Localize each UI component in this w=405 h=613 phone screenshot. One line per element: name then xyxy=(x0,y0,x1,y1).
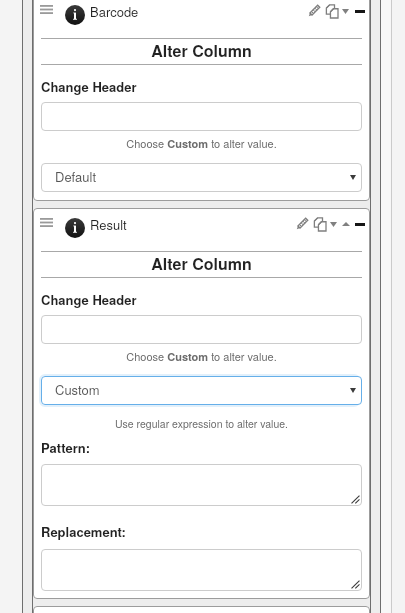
button[interactable]: Info xyxy=(65,218,85,238)
button[interactable]: Edit xyxy=(295,215,309,233)
button[interactable] xyxy=(41,315,362,344)
staticText: Replacement: xyxy=(41,522,126,541)
button[interactable]: Collapse xyxy=(353,215,366,233)
button[interactable]: Move down xyxy=(340,2,351,20)
staticText: Barcode xyxy=(90,2,139,21)
staticText: Change Header xyxy=(41,290,137,309)
button[interactable]: Collapse xyxy=(353,2,366,20)
button[interactable]: Duplicate xyxy=(311,215,327,233)
button[interactable] xyxy=(41,102,362,131)
button[interactable]: Drag handle xyxy=(36,213,56,231)
staticText: Choose Custom to alter value. xyxy=(41,135,362,151)
staticText: Alter Column xyxy=(41,252,362,275)
staticText: Result xyxy=(90,215,127,234)
staticText: Use regular expression to alter value. xyxy=(41,416,362,431)
button[interactable]: Duplicate xyxy=(323,2,339,20)
button[interactable]: Move up xyxy=(340,215,351,233)
button[interactable] xyxy=(41,549,362,591)
button[interactable] xyxy=(41,464,362,506)
staticText: Choose Custom to alter value. xyxy=(41,348,362,364)
button[interactable]: Default xyxy=(41,163,362,192)
staticText: Custom xyxy=(55,380,100,399)
button[interactable]: Custom xyxy=(41,376,362,405)
staticText: Alter Column xyxy=(41,39,362,62)
button[interactable]: Move down xyxy=(328,215,339,233)
staticText: Change Header xyxy=(41,77,137,96)
button[interactable]: Edit xyxy=(307,2,321,20)
button[interactable]: Drag handle xyxy=(36,0,56,18)
staticText: Pattern: xyxy=(41,438,90,457)
staticText: Default xyxy=(55,167,97,186)
button[interactable]: Info xyxy=(65,5,85,25)
